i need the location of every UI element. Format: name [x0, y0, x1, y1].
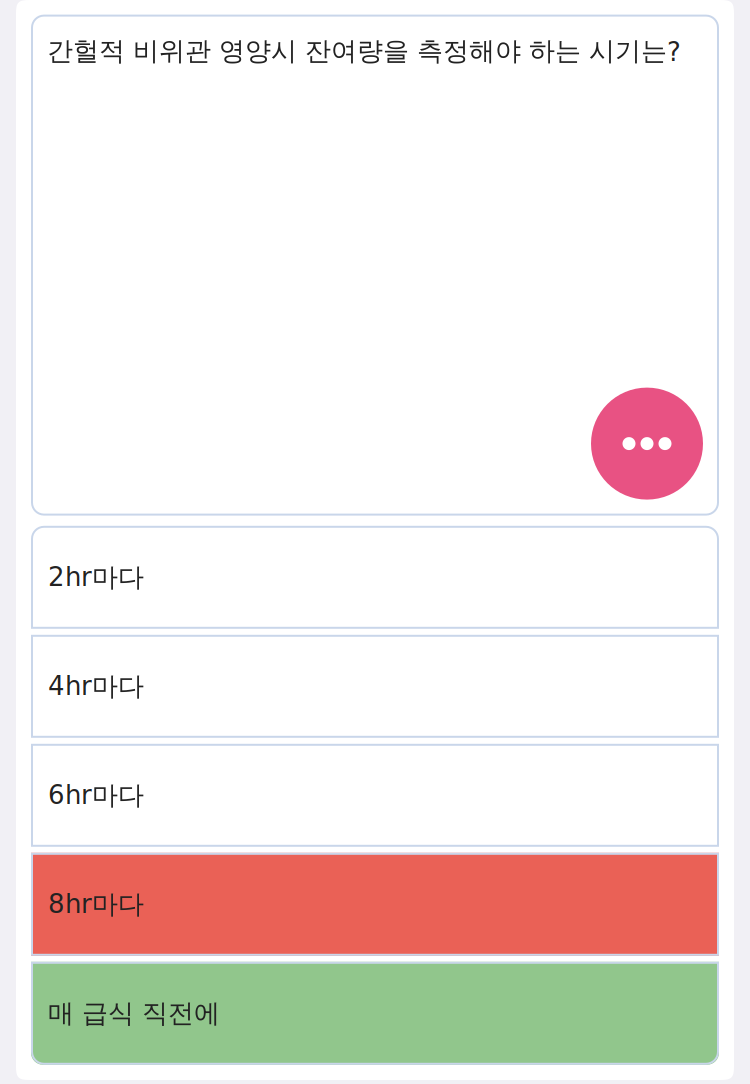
button[interactable]: 8hr마다 [31, 853, 719, 956]
button[interactable]: More [591, 388, 703, 500]
staticText: 4hr마다 [48, 670, 144, 703]
button[interactable]: 6hr마다 [31, 744, 719, 847]
staticText: 매 급식 직전에 [48, 997, 220, 1030]
staticText: 6hr마다 [48, 779, 144, 812]
staticText: 8hr마다 [48, 888, 144, 921]
staticText: 2hr마다 [48, 561, 144, 594]
button[interactable]: 매 급식 직전에 [31, 962, 719, 1065]
button[interactable]: 4hr마다 [31, 635, 719, 738]
button[interactable]: 2hr마다 [31, 526, 719, 629]
staticText: 간헐적 비위관 영양시 잔여량을 측정해야 하는 시기는? [47, 35, 681, 67]
